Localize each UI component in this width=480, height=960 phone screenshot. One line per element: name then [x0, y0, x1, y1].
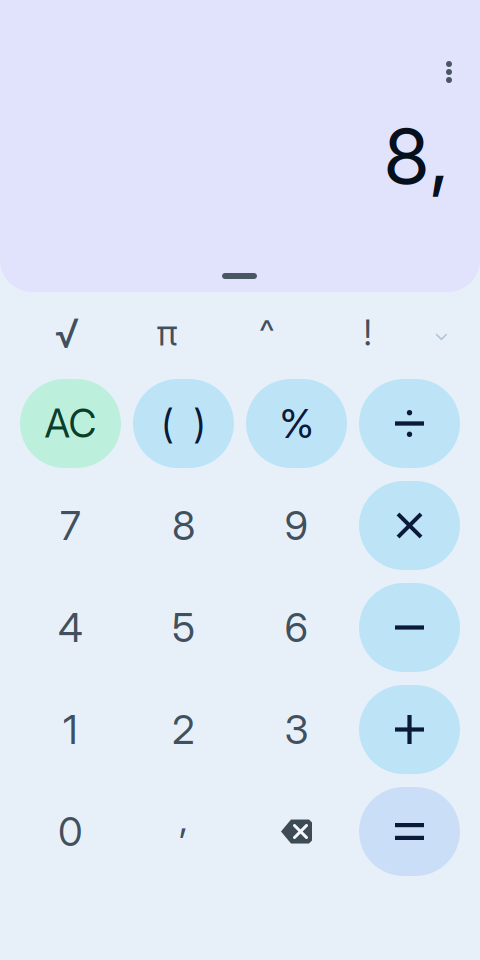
button[interactable]: , [133, 787, 234, 876]
staticText: 1 [63, 705, 78, 754]
staticText: AC [44, 400, 96, 447]
staticText: 8 [172, 501, 195, 550]
button[interactable]: π [117, 305, 217, 361]
staticText: ( ) [161, 400, 205, 447]
button[interactable]: Plus [359, 685, 460, 774]
button[interactable]: Multiply [359, 481, 460, 570]
button[interactable]: Backspace [246, 787, 347, 876]
button[interactable]: √ [17, 305, 117, 361]
staticText: π [156, 312, 177, 354]
staticText: % [279, 399, 313, 448]
staticText: ! [363, 312, 371, 354]
button[interactable]: More options [427, 50, 471, 94]
button[interactable]: Percent [246, 379, 347, 468]
button[interactable]: 7 [20, 481, 121, 570]
staticText: 9 [284, 501, 308, 550]
staticText: 0 [58, 807, 83, 856]
button[interactable]: Parentheses [133, 379, 234, 468]
staticText: 8, [383, 110, 450, 202]
button[interactable]: Divide [359, 379, 460, 468]
staticText: ^ [259, 312, 275, 354]
staticText: √ [55, 309, 79, 357]
button[interactable]: 8 [133, 481, 234, 570]
button[interactable]: 2 [133, 685, 234, 774]
button[interactable]: Minus [359, 583, 460, 672]
staticText: 5 [172, 603, 195, 652]
staticText: ⌄ [433, 321, 449, 345]
staticText: 2 [172, 705, 195, 754]
button[interactable]: 0 [20, 787, 121, 876]
button[interactable]: ^ [217, 305, 317, 361]
button[interactable]: 1 [20, 685, 121, 774]
button[interactable]: 6 [246, 583, 347, 672]
staticText: , [179, 793, 188, 842]
button[interactable]: 3 [246, 685, 347, 774]
staticText: 3 [284, 705, 308, 754]
staticText: 6 [284, 603, 308, 652]
button[interactable]: 9 [246, 481, 347, 570]
button[interactable]: Equals [359, 787, 460, 876]
button[interactable]: 4 [20, 583, 121, 672]
button[interactable]: 5 [133, 583, 234, 672]
button[interactable]: ⌄ [418, 305, 465, 361]
button[interactable]: ! [317, 305, 418, 361]
button[interactable]: All clear [20, 379, 121, 468]
staticText: 4 [58, 603, 83, 652]
staticText: 7 [60, 501, 81, 550]
